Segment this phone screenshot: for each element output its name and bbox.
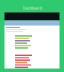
staticText: Dashboard xyxy=(22,5,41,11)
